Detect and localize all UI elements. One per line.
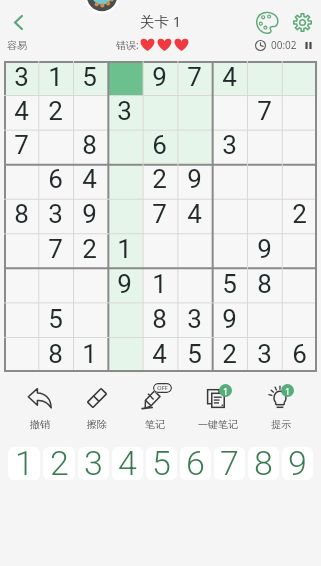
button[interactable]: 5 — [72, 61, 107, 95]
button[interactable]: 6 — [142, 129, 177, 163]
button[interactable]: 1 — [8, 447, 40, 480]
button[interactable] — [38, 267, 72, 302]
button[interactable]: 9 — [142, 61, 177, 95]
button[interactable] — [177, 129, 212, 163]
button[interactable]: 1 — [38, 61, 72, 95]
button[interactable]: 1 — [107, 232, 142, 267]
button[interactable] — [247, 302, 282, 337]
button[interactable]: 4 — [4, 95, 38, 129]
button[interactable] — [282, 95, 317, 129]
button[interactable] — [142, 95, 177, 129]
button[interactable]: Pause — [303, 40, 314, 51]
button[interactable] — [282, 267, 317, 302]
button[interactable]: 1 — [72, 337, 107, 372]
button[interactable]: 5 — [38, 302, 72, 337]
button[interactable]: 9 — [72, 197, 107, 232]
button[interactable]: 3 — [247, 337, 282, 372]
button[interactable] — [247, 197, 282, 232]
button[interactable]: 8 — [247, 267, 282, 302]
button[interactable] — [107, 61, 142, 95]
button[interactable] — [177, 95, 212, 129]
button[interactable]: 6 — [180, 447, 211, 480]
button[interactable]: 9 — [282, 447, 313, 480]
button[interactable] — [4, 337, 38, 372]
button[interactable]: 9 — [177, 163, 212, 197]
button[interactable] — [142, 232, 177, 267]
button[interactable] — [212, 95, 247, 129]
button[interactable]: 2 — [38, 95, 72, 129]
button[interactable] — [107, 302, 142, 337]
button[interactable]: 7 — [4, 129, 38, 163]
button[interactable]: 2 — [282, 197, 317, 232]
button[interactable] — [4, 163, 38, 197]
button[interactable]: 4 — [72, 163, 107, 197]
button[interactable] — [38, 129, 72, 163]
button[interactable]: 8 — [72, 129, 107, 163]
button[interactable]: 1 — [142, 267, 177, 302]
button[interactable]: 7 — [142, 197, 177, 232]
button[interactable]: 擦除 — [78, 383, 116, 432]
button[interactable]: Back — [3, 7, 33, 37]
button[interactable]: 9 — [107, 267, 142, 302]
button[interactable]: 3 — [107, 95, 142, 129]
button[interactable] — [4, 232, 38, 267]
button[interactable]: 4 — [212, 61, 247, 95]
button[interactable]: 2 — [212, 337, 247, 372]
button[interactable]: 4 — [142, 337, 177, 372]
button[interactable]: 4 — [112, 447, 143, 480]
button[interactable]: 1 — [262, 383, 300, 432]
button[interactable]: 5 — [146, 447, 177, 480]
button[interactable]: 7 — [247, 95, 282, 129]
button[interactable] — [107, 197, 142, 232]
button[interactable] — [212, 163, 247, 197]
button[interactable] — [72, 302, 107, 337]
button[interactable] — [107, 337, 142, 372]
button[interactable]: 6 — [38, 163, 72, 197]
button[interactable]: 7 — [214, 447, 245, 480]
button[interactable]: 5 — [212, 267, 247, 302]
button[interactable] — [72, 267, 107, 302]
button[interactable]: 2 — [142, 163, 177, 197]
button[interactable] — [212, 197, 247, 232]
button[interactable] — [107, 129, 142, 163]
button[interactable] — [247, 129, 282, 163]
button[interactable]: 8 — [4, 197, 38, 232]
button[interactable]: 3 — [38, 197, 72, 232]
button[interactable]: 8 — [248, 447, 279, 480]
button[interactable]: 2 — [43, 447, 75, 480]
button[interactable]: 9 — [247, 232, 282, 267]
button[interactable]: 7 — [38, 232, 72, 267]
button[interactable]: 3 — [212, 129, 247, 163]
button[interactable]: 3 — [4, 61, 38, 95]
button[interactable] — [282, 129, 317, 163]
button[interactable] — [107, 163, 142, 197]
button[interactable]: 8 — [38, 337, 72, 372]
button[interactable] — [282, 302, 317, 337]
button[interactable]: Settings — [285, 5, 319, 39]
button[interactable] — [282, 232, 317, 267]
button[interactable]: Theme — [249, 4, 285, 40]
button[interactable] — [177, 267, 212, 302]
button[interactable] — [72, 95, 107, 129]
button[interactable] — [247, 163, 282, 197]
button[interactable]: 9 — [212, 302, 247, 337]
button[interactable]: 1 — [193, 383, 243, 432]
button[interactable]: 8 — [142, 302, 177, 337]
button[interactable]: 6 — [282, 337, 317, 372]
button[interactable] — [282, 163, 317, 197]
button[interactable]: 4 — [177, 197, 212, 232]
button[interactable]: 5 — [177, 337, 212, 372]
button[interactable]: 3 — [78, 447, 109, 480]
button[interactable]: OFF — [136, 383, 174, 432]
button[interactable]: 3 — [177, 302, 212, 337]
button[interactable] — [282, 61, 317, 95]
button[interactable] — [212, 232, 247, 267]
button[interactable]: 撤销 — [21, 383, 59, 432]
button[interactable] — [4, 267, 38, 302]
button[interactable] — [177, 232, 212, 267]
button[interactable]: 2 — [72, 232, 107, 267]
button[interactable]: 7 — [177, 61, 212, 95]
button[interactable] — [247, 61, 282, 95]
button[interactable] — [4, 302, 38, 337]
staticText: 1 — [48, 62, 63, 92]
